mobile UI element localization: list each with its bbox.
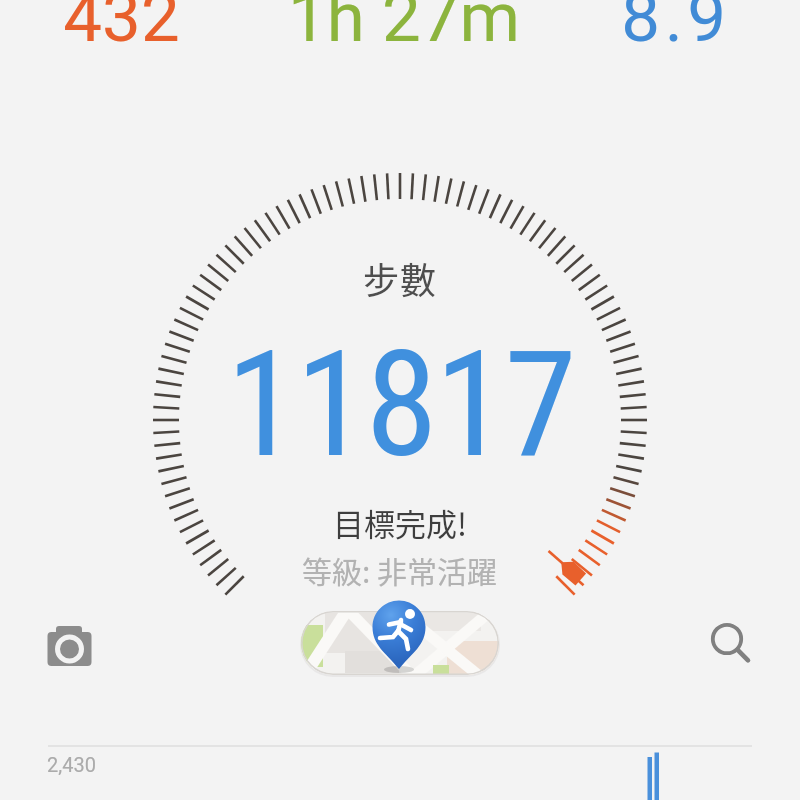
staticText: 等級: 非常活躍: [302, 548, 498, 591]
staticText: 11817: [226, 319, 574, 491]
staticText: 8.9: [621, 0, 731, 58]
staticText: 1h 27m: [288, 0, 520, 58]
staticText: 432: [63, 0, 180, 58]
staticText: 2,430: [47, 753, 96, 776]
button[interactable]: [301, 611, 499, 675]
staticText: 步數: [363, 252, 438, 304]
button[interactable]: [38, 615, 102, 675]
staticText: 目標完成!: [333, 500, 468, 545]
button[interactable]: [698, 612, 762, 674]
